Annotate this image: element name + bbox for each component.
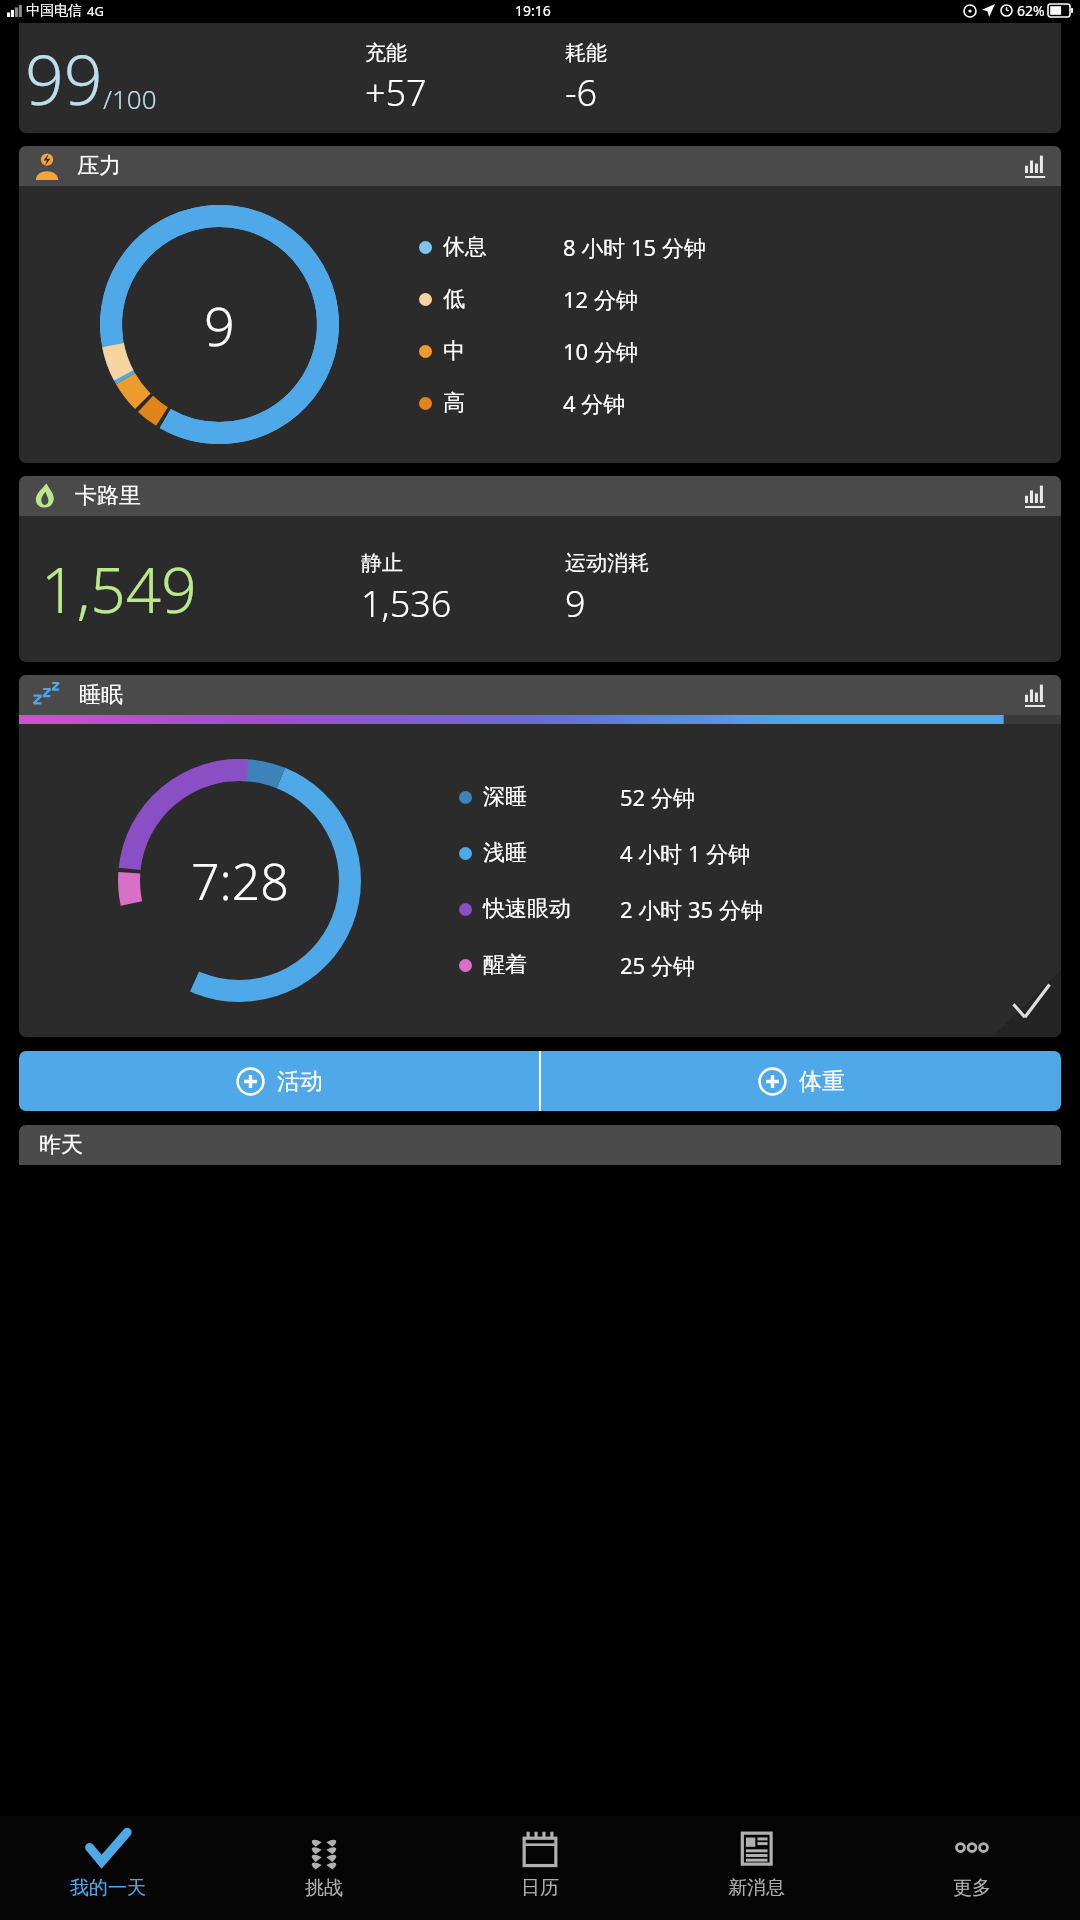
staticText: 4G	[87, 2, 104, 20]
staticText: 挑战	[305, 1876, 343, 1900]
staticText: 52 分钟	[620, 782, 695, 812]
button[interactable]: 7:28	[19, 724, 1061, 1037]
button[interactable]: 新消息	[648, 1816, 864, 1920]
staticText: 静止	[361, 550, 403, 576]
staticText: 卡路里	[75, 482, 141, 510]
staticText: 4 分钟	[563, 388, 626, 418]
staticText: 日历	[521, 1876, 559, 1900]
staticText: 深睡	[483, 783, 620, 811]
staticText: 1,536	[361, 579, 452, 628]
staticText: 25 分钟	[620, 950, 695, 980]
button[interactable]: 睡眠	[19, 675, 1061, 715]
staticText: 昨天	[39, 1131, 83, 1159]
staticText: 睡眠	[79, 681, 123, 709]
staticText: 压力	[77, 152, 121, 180]
staticText: 62%	[1017, 1, 1045, 20]
button[interactable]: 99	[19, 23, 1061, 133]
staticText: 耗能	[565, 40, 607, 66]
staticText: 高	[443, 389, 563, 417]
staticText: +57	[365, 68, 427, 117]
staticText: 更多	[953, 1876, 991, 1900]
staticText: /100	[103, 81, 157, 116]
staticText: 99	[25, 32, 103, 125]
staticText: 19:16	[515, 1, 551, 20]
staticText: 活动	[277, 1067, 323, 1096]
other: Chart	[1025, 155, 1047, 177]
staticText: 9	[565, 579, 586, 628]
button[interactable]: 体重	[541, 1051, 1061, 1111]
staticText: 中国电信	[26, 2, 82, 20]
button[interactable]: 更多	[864, 1816, 1080, 1920]
staticText: -6	[565, 68, 598, 117]
staticText: 新消息	[728, 1876, 785, 1900]
button[interactable]: 活动	[19, 1051, 539, 1111]
button[interactable]: 9	[19, 186, 1061, 463]
staticText: 醒着	[483, 951, 620, 979]
button[interactable]: 卡路里	[19, 476, 1061, 516]
button[interactable]: 挑战	[216, 1816, 432, 1920]
staticText: 中	[443, 337, 563, 365]
staticText: 8 小时 15 分钟	[563, 232, 706, 262]
staticText: 浅睡	[483, 839, 620, 867]
staticText: 体重	[799, 1067, 845, 1096]
staticText: 9	[204, 288, 235, 362]
staticText: 12 分钟	[563, 284, 638, 314]
staticText: 休息	[443, 233, 563, 261]
staticText: 10 分钟	[563, 336, 638, 366]
button[interactable]: 日历	[432, 1816, 648, 1920]
staticText: 2 小时 35 分钟	[620, 894, 763, 924]
staticText: 低	[443, 285, 563, 313]
staticText: 充能	[365, 40, 407, 66]
button[interactable]: 我的一天	[0, 1816, 216, 1920]
button[interactable]: 压力	[19, 146, 1061, 186]
staticText: 4 小时 1 分钟	[620, 838, 751, 868]
other: Chart	[1025, 684, 1047, 706]
staticText: 快速眼动	[483, 895, 620, 923]
button[interactable]: 昨天	[19, 1125, 1061, 1165]
other: Chart	[1025, 485, 1047, 507]
staticText: 7:28	[191, 847, 289, 915]
staticText: 我的一天	[70, 1876, 146, 1900]
staticText: 1,549	[41, 547, 197, 631]
staticText: 运动消耗	[565, 550, 649, 576]
button[interactable]: 1,549	[19, 516, 1061, 662]
